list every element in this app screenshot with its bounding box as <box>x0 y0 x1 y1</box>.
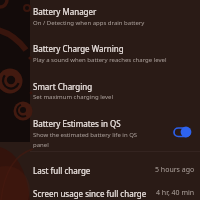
staticText: On / Detecting when apps drain battery <box>33 19 145 27</box>
staticText: Set maximum charging level <box>33 93 113 101</box>
staticText: panel <box>33 141 49 149</box>
button[interactable] <box>0 182 200 200</box>
staticText: Smart Charging <box>33 81 93 92</box>
staticText: Battery Charge Warning <box>33 43 124 54</box>
button[interactable] <box>0 152 200 182</box>
button[interactable] <box>0 75 200 112</box>
staticText: Last full charge <box>33 165 91 176</box>
button[interactable] <box>171 124 195 140</box>
staticText: 5 hours ago <box>155 165 195 175</box>
button[interactable] <box>0 0 200 37</box>
staticText: 4 hr, 40 min <box>156 188 195 198</box>
staticText: Battery Manager <box>33 6 97 17</box>
staticText: Play a sound when battery reaches charge… <box>33 56 167 64</box>
button[interactable] <box>0 37 200 75</box>
staticText: Battery Estimates in QS <box>33 118 121 129</box>
button[interactable] <box>0 112 200 152</box>
staticText: Screen usage since full charge <box>33 188 147 199</box>
staticText: Show the estimated battery life in QS <box>33 131 138 139</box>
